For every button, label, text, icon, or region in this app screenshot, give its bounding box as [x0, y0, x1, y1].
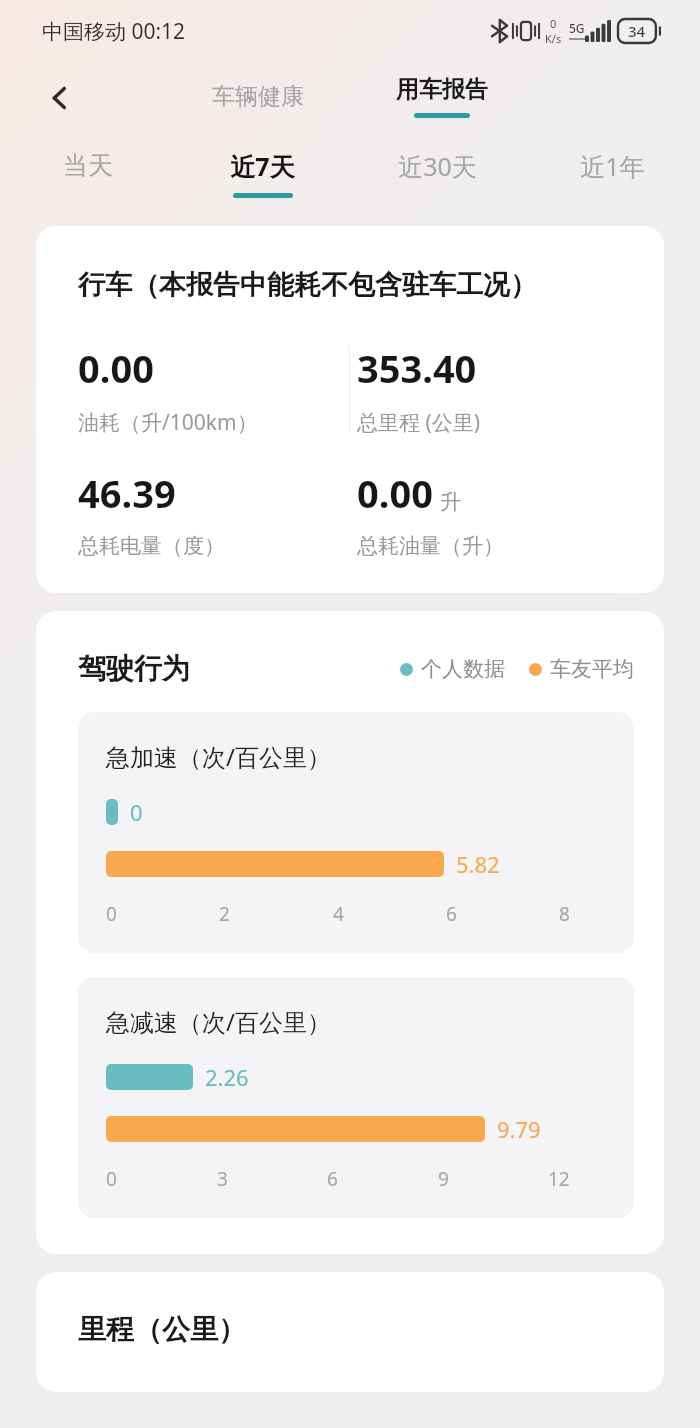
staticText: 近1年: [580, 149, 645, 183]
button[interactable]: Back: [36, 74, 84, 122]
staticText: 0: [130, 797, 143, 827]
staticText: 6: [446, 901, 457, 927]
staticText: 总耗电量（度）: [78, 533, 225, 559]
staticText: 车辆健康: [212, 82, 304, 111]
staticText: 353.40: [357, 342, 477, 394]
staticText: 0: [106, 1166, 117, 1192]
button[interactable]: 行车（本报告中能耗不包含驻车工况）: [36, 226, 664, 593]
button[interactable]: 急减速（次/百公里）: [78, 977, 634, 1218]
staticText: 里程（公里）: [78, 1312, 246, 1347]
staticText: 9: [438, 1166, 449, 1192]
staticText: 总耗油量（升）: [357, 533, 504, 559]
button[interactable]: 近7天: [175, 134, 350, 212]
staticText: 34: [628, 21, 646, 41]
staticText: 0: [550, 16, 557, 31]
staticText: 油耗（升/100km）: [78, 408, 258, 437]
staticText: 3: [217, 1166, 228, 1192]
button[interactable]: 当天: [0, 134, 175, 212]
staticText: 9.79: [497, 1114, 541, 1144]
button[interactable]: 近30天: [350, 134, 525, 212]
staticText: 当天: [63, 150, 113, 181]
staticText: 6: [327, 1166, 338, 1192]
staticText: 12: [548, 1166, 570, 1192]
staticText: 8: [559, 901, 570, 927]
staticText: 5G: [569, 20, 585, 36]
button[interactable]: 车辆健康: [194, 76, 322, 117]
button[interactable]: 近1年: [525, 134, 700, 212]
staticText: 急加速（次/百公里）: [106, 740, 331, 773]
button[interactable]: 急加速（次/百公里）: [78, 712, 634, 953]
staticText: 5.82: [456, 849, 500, 879]
staticText: 0: [106, 901, 117, 927]
staticText: 2.26: [205, 1062, 249, 1092]
staticText: 急减速（次/百公里）: [106, 1005, 331, 1038]
staticText: 近7天: [230, 149, 295, 183]
staticText: 驾驶行为: [78, 651, 190, 686]
button[interactable]: 里程（公里）: [36, 1272, 664, 1392]
staticText: 用车报告: [396, 75, 488, 104]
staticText: 0.00: [357, 467, 433, 519]
staticText: 近30天: [398, 149, 477, 183]
staticText: 个人数据: [421, 656, 505, 682]
staticText: 行车（本报告中能耗不包含驻车工况）: [78, 268, 537, 302]
button[interactable]: 用车报告: [378, 69, 506, 124]
staticText: 2: [219, 901, 230, 927]
staticText: 46.39: [78, 467, 176, 519]
staticText: 4: [333, 901, 344, 927]
staticText: 车友平均: [550, 656, 634, 682]
staticText: 总里程 (公里): [357, 408, 481, 437]
staticText: 升: [440, 489, 461, 515]
staticText: 0.00: [78, 342, 154, 394]
staticText: 中国移动 00:12: [42, 17, 186, 46]
staticText: K/s: [545, 31, 562, 46]
